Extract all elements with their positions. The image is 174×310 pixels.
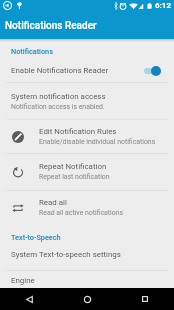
staticText: Read all xyxy=(39,198,67,207)
staticText: Notifications Reader xyxy=(5,20,97,32)
button[interactable]: System Text-to-speech settings xyxy=(0,241,174,267)
staticText: System Text-to-speech settings xyxy=(11,250,121,259)
staticText: Notification access is enabled. xyxy=(11,103,105,111)
button[interactable]: Edit Notification Rules xyxy=(0,119,174,154)
button[interactable]: Engine xyxy=(0,273,174,288)
button[interactable]: Read all xyxy=(0,190,174,225)
button[interactable]: Enable Notifications Reader xyxy=(0,58,174,82)
button[interactable]: Recent apps xyxy=(116,288,174,310)
staticText: Enable Notifications Reader xyxy=(11,66,109,75)
staticText: Repeat Notification xyxy=(39,162,107,171)
staticText: Enable/disable individual notifications xyxy=(39,138,156,146)
staticText: 6:12 xyxy=(155,1,172,10)
button[interactable]: Back xyxy=(0,288,58,310)
staticText: Notifications xyxy=(11,47,53,56)
button[interactable]: Home xyxy=(58,288,116,310)
staticText: Text-to-Speech xyxy=(11,233,61,242)
staticText: Repeat last notification xyxy=(39,173,110,181)
button[interactable]: System notification access xyxy=(0,83,174,119)
staticText: System notification access xyxy=(11,92,106,101)
button[interactable]: Repeat Notification xyxy=(0,154,174,189)
staticText: Engine xyxy=(11,276,35,285)
staticText: Edit Notification Rules xyxy=(39,127,117,136)
staticText: Read all active notifications xyxy=(39,209,124,217)
